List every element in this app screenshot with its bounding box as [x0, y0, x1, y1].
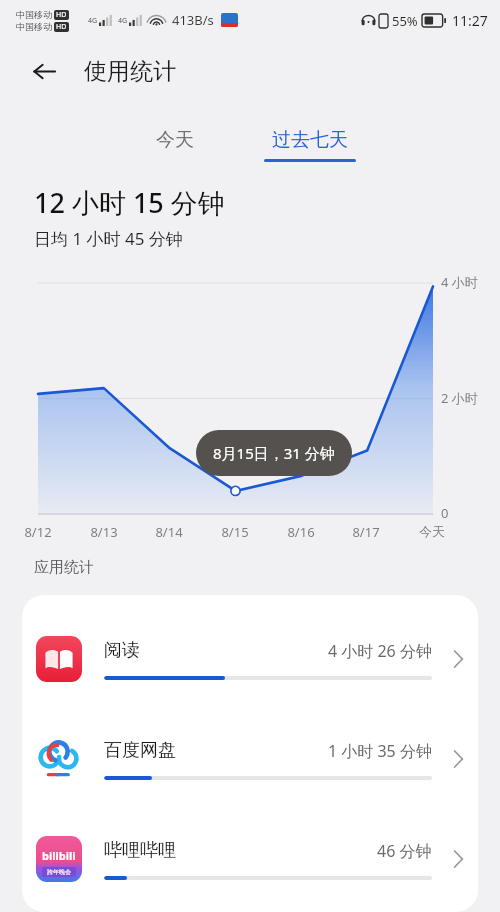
staticText: 8/16 [279, 523, 323, 541]
staticText: 百度网盘 [104, 739, 328, 762]
button[interactable]: bilibili [22, 809, 478, 909]
staticText: 过去七天 [272, 128, 348, 152]
staticText: 跨年晚会 [47, 868, 71, 876]
staticText: 8/17 [344, 523, 388, 541]
button[interactable]: 阅读 [22, 609, 478, 709]
staticText: 413B/s [172, 11, 214, 29]
button[interactable]: 过去七天 [256, 124, 364, 166]
staticText: bilibili [42, 848, 76, 863]
staticText: 0 [441, 504, 449, 522]
staticText: 1 小时 35 分钟 [328, 740, 432, 762]
staticText: 12 小时 15 分钟 [34, 184, 225, 221]
staticText: 55% [392, 12, 418, 30]
staticText: 4G [88, 16, 98, 26]
staticText: 哔哩哔哩 [104, 839, 377, 862]
staticText: 46 分钟 [377, 840, 432, 862]
staticText: 应用统计 [34, 558, 94, 577]
button[interactable]: 今天 [136, 124, 214, 156]
staticText: 中国移动 [16, 9, 52, 20]
staticText: 今天 [156, 128, 194, 152]
staticText: 4 小时 26 分钟 [328, 640, 432, 662]
staticText: 8月15日，31 分钟 [213, 443, 335, 463]
staticText: 4 小时 [441, 273, 478, 291]
staticText: HD [56, 22, 67, 32]
button[interactable]: Back [22, 49, 66, 93]
staticText: 8/12 [16, 523, 60, 541]
staticText: 阅读 [104, 639, 328, 662]
button[interactable]: 百度网盘 [22, 709, 478, 809]
staticText: 使用统计 [84, 57, 176, 86]
staticText: 中国移动 [16, 21, 52, 32]
staticText: HD [56, 10, 67, 20]
staticText: 2 小时 [441, 389, 478, 407]
staticText: 今天 [410, 523, 454, 539]
staticText: 11:27 [452, 11, 488, 30]
staticText: 4G [118, 16, 128, 26]
staticText: 8/15 [213, 523, 257, 541]
staticText: 8/13 [82, 523, 126, 541]
staticText: 8/14 [147, 523, 191, 541]
staticText: 日均 1 小时 45 分钟 [34, 227, 183, 250]
